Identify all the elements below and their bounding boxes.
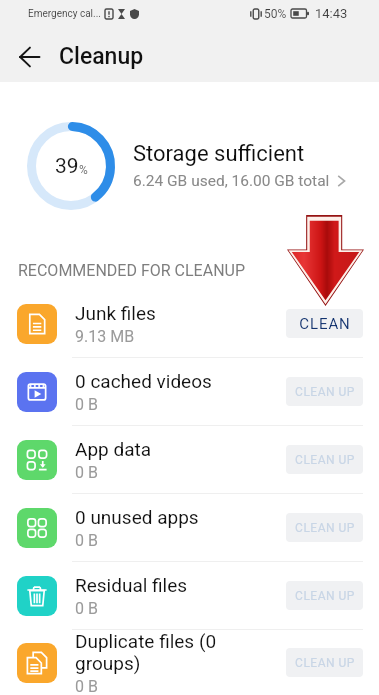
button[interactable]: App data [0, 426, 379, 493]
staticText: CLEAN UP [295, 453, 355, 467]
staticText: 0 B [75, 677, 98, 695]
staticText: Duplicate files (0 groups) [75, 630, 278, 674]
staticText: App data [75, 438, 152, 460]
staticText: 14:43 [315, 6, 348, 21]
button[interactable]: Duplicate files (0 groups) [0, 630, 379, 695]
staticText: 0 B [75, 531, 98, 550]
staticText: 6.24 GB used, 16.00 GB total [133, 172, 330, 190]
staticText: Cleanup [59, 43, 144, 70]
staticText: 50% [264, 7, 287, 21]
staticText: CLEAN [299, 315, 351, 333]
staticText: Storage sufficient [133, 141, 305, 167]
button[interactable]: Back [0, 27, 56, 82]
staticText: 0 cached videos [75, 370, 212, 392]
button[interactable]: Junk files [0, 290, 379, 357]
button[interactable]: CLEAN UP [286, 648, 363, 677]
staticText: CLEAN UP [295, 589, 355, 603]
staticText: 39 [55, 154, 79, 179]
button[interactable]: Residual files [0, 562, 379, 629]
button[interactable]: 0 unused apps [0, 494, 379, 561]
staticText: Residual files [75, 574, 188, 596]
button[interactable]: CLEAN UP [286, 445, 363, 474]
staticText: CLEAN UP [295, 656, 355, 670]
button[interactable]: 0 cached videos [0, 358, 379, 425]
button[interactable]: CLEAN UP [286, 377, 363, 406]
staticText: 0 B [75, 599, 98, 618]
staticText: Emergency cal... [28, 8, 101, 20]
staticText: 0 B [75, 395, 98, 414]
button[interactable]: CLEAN UP [286, 513, 363, 542]
button[interactable]: CLEAN [286, 309, 363, 338]
staticText: Junk files [75, 302, 156, 324]
staticText: 0 B [75, 463, 98, 482]
button[interactable]: CLEAN UP [286, 581, 363, 610]
staticText: 9.13 MB [75, 327, 135, 346]
staticText: 0 unused apps [75, 506, 199, 528]
staticText: % [79, 163, 88, 177]
button[interactable]: 39 [0, 82, 379, 250]
staticText: RECOMMENDED FOR CLEANUP [18, 261, 246, 280]
staticText: CLEAN UP [295, 521, 355, 535]
staticText: CLEAN UP [295, 385, 355, 399]
